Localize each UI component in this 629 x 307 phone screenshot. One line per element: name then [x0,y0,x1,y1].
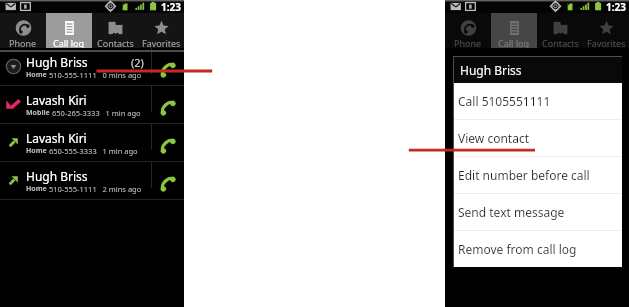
button[interactable]: Call log [46,13,92,48]
staticText: Call log [498,37,530,48]
button[interactable]: Favorites [138,13,184,48]
staticText: Mobile [26,108,50,118]
staticText: Remove from call log [458,241,577,257]
button[interactable]: Hugh Briss [0,48,151,85]
button[interactable]: View contact [454,120,622,156]
staticText: Phone [9,37,37,48]
staticText: 650-555-3333 1 min ago [47,146,138,156]
staticText: Send text message [458,204,565,220]
staticText: Home [26,70,47,80]
button[interactable]: Call log [491,13,537,48]
button[interactable]: Call Hugh Briss [152,162,184,199]
staticText: Home [26,184,47,194]
button[interactable]: Favorites [583,13,629,48]
staticText: Contacts [97,37,134,48]
staticText: Lavash Kiri [26,92,87,108]
staticText: 1:23 [606,0,626,13]
button[interactable]: Remove from call log [454,231,622,267]
button[interactable]: Phone [445,13,491,48]
staticText: Hugh Briss [26,168,88,184]
staticText: Phone [454,37,482,48]
staticText: Home [26,146,47,156]
staticText: Call 5105551111 [458,93,551,109]
button[interactable]: Hugh Briss [0,162,151,199]
button[interactable]: Call Hugh Briss [152,48,184,85]
staticText: Hugh Briss [26,54,88,70]
staticText: Favorites [142,37,181,48]
button[interactable]: Send text message [454,194,622,230]
staticText: 510-555-1111 0 mins ago [47,70,142,80]
staticText: 650-265-3333 1 min ago [50,108,141,118]
button[interactable]: Lavash Kiri [0,86,151,123]
staticText: View contact [458,130,529,146]
button[interactable]: Call Lavash Kiri [152,86,184,123]
button[interactable]: Phone [0,13,46,48]
staticText: Lavash Kiri [26,130,87,146]
staticText: Call log [53,37,85,48]
staticText: Favorites [587,37,626,48]
staticText: Contacts [542,37,579,48]
staticText: (2) [131,55,144,70]
button[interactable]: Call 5105551111 [454,83,622,119]
button[interactable]: Contacts [92,13,138,48]
staticText: 1:23 [161,0,181,13]
button[interactable]: Call Lavash Kiri [152,124,184,161]
staticText: 510-555-1111 2 mins ago [47,184,142,194]
staticText: Edit number before call [458,167,590,183]
button[interactable]: Contacts [537,13,583,48]
staticText: Hugh Briss [460,62,522,78]
button[interactable]: Lavash Kiri [0,124,151,161]
button[interactable]: Edit number before call [454,157,622,193]
